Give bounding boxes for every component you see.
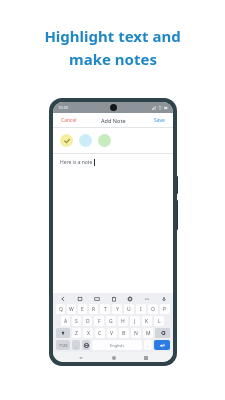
button[interactable]: I [136,304,146,314]
button[interactable]: Z [72,328,81,338]
button[interactable]: Shift [56,328,70,338]
staticText: T [104,306,107,313]
button[interactable] [79,134,92,147]
button[interactable]: . [144,340,152,350]
button[interactable]: L [154,316,164,326]
button[interactable]: Q [56,304,65,314]
staticText: M [146,330,151,337]
button[interactable]: Stickers [75,294,84,303]
button[interactable]: E [78,304,87,314]
staticText: H [121,318,125,325]
staticText: Add Note [101,117,126,124]
staticText: F [98,318,101,325]
button[interactable]: H [118,316,128,326]
button[interactable]: ?123 [56,340,70,350]
button[interactable]: R [89,304,98,314]
staticText: S [75,318,78,325]
button[interactable]: P [160,304,170,314]
staticText: V [110,330,114,337]
button[interactable]: K [142,316,152,326]
staticText: I [140,306,142,313]
staticText: X [87,330,90,337]
button[interactable]: Voice input [159,294,168,303]
button[interactable]: U [124,304,134,314]
button[interactable]: Home [109,353,118,362]
button[interactable]: M [143,328,153,338]
staticText: . [147,342,149,348]
staticText: U [127,306,131,313]
staticText: make notes [69,49,157,69]
staticText: W [69,306,74,313]
staticText: G [109,318,113,325]
button[interactable]: B [119,328,129,338]
button[interactable]: Back [76,353,85,362]
button[interactable]: Save [152,115,167,126]
staticText: Save [154,117,165,124]
staticText: Y [116,306,119,313]
button[interactable]: N [131,328,141,338]
button[interactable]: Emoji shortcut [72,340,80,350]
staticText: ?123 [59,343,68,348]
button[interactable]: Clipboard [109,294,118,303]
button[interactable]: Enter [154,340,170,350]
button[interactable]: T [100,304,110,314]
button[interactable]: Recents [141,353,150,362]
staticText: E [81,306,84,313]
button[interactable]: V [107,328,117,338]
staticText: 10:00 [58,105,69,110]
staticText: Cancel [61,117,77,124]
button[interactable] [98,134,111,147]
button[interactable]: J [130,316,140,326]
staticText: L [158,318,161,325]
button[interactable]: Emoji [82,340,90,350]
button[interactable]: G [106,316,116,326]
staticText: Q [59,306,63,313]
button[interactable]: O [148,304,158,314]
staticText: R [92,306,96,313]
button[interactable]: S [72,316,81,326]
staticText: J [134,318,136,325]
staticText: C [98,330,102,337]
staticText: Highlight text and [44,26,181,46]
staticText: K [145,318,149,325]
staticText: A [64,318,68,325]
button[interactable]: A [61,316,70,326]
staticText: English [110,343,124,348]
staticText: O [151,306,155,313]
button[interactable]: More [142,294,151,303]
staticText: , [75,343,77,348]
staticText: B [122,330,126,337]
button[interactable]: Backspace [155,328,170,338]
staticText: P [163,306,167,313]
button[interactable]: X [83,328,93,338]
button[interactable]: GIF [92,294,101,303]
button[interactable]: Cancel [59,115,79,126]
button[interactable]: Settings [125,294,134,303]
staticText: N [134,330,138,337]
button[interactable]: C [95,328,105,338]
button[interactable]: Back [58,294,67,303]
button[interactable]: Y [112,304,122,314]
button[interactable]: Space [92,340,142,350]
button[interactable] [60,134,73,147]
button[interactable]: D [83,316,92,326]
staticText: Z [75,330,78,337]
button[interactable]: W [67,304,76,314]
staticText: Here is a note [60,159,93,166]
staticText: D [86,318,90,325]
button[interactable]: F [94,316,104,326]
